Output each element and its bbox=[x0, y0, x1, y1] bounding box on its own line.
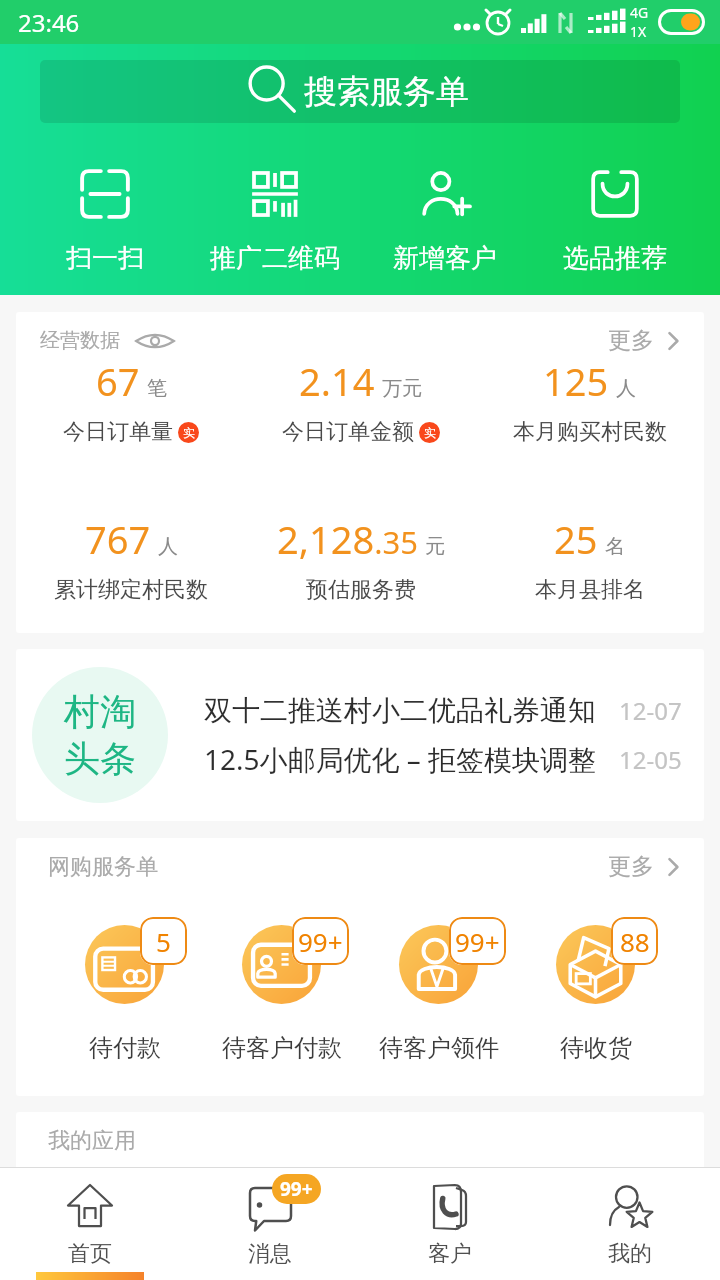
staticText: 12-05 bbox=[619, 743, 682, 776]
staticText: 人 bbox=[158, 534, 178, 559]
staticText: 5 bbox=[156, 924, 171, 959]
staticText: 元 bbox=[425, 534, 445, 559]
staticText: 村淘 bbox=[64, 689, 136, 734]
staticText: 67 bbox=[96, 355, 140, 407]
staticText: 本月购买村民数 bbox=[513, 418, 667, 446]
staticText: 笔 bbox=[147, 376, 167, 401]
staticText: 新增客户 bbox=[393, 242, 497, 275]
staticText: 我的应用 bbox=[48, 1127, 136, 1155]
button[interactable]: 村淘 bbox=[16, 649, 704, 821]
staticText: 实 bbox=[424, 425, 436, 440]
staticText: 名 bbox=[605, 534, 625, 559]
staticText: 99+ bbox=[455, 924, 500, 959]
staticText: 本月县排名 bbox=[535, 576, 645, 604]
button[interactable]: 2,128.35 bbox=[246, 513, 475, 604]
staticText: 我的 bbox=[608, 1240, 652, 1268]
staticText: 搜索服务单 bbox=[304, 71, 469, 113]
staticText: 88 bbox=[620, 924, 650, 959]
button[interactable]: 99+ bbox=[203, 917, 360, 1063]
button[interactable]: 125 bbox=[475, 355, 704, 446]
staticText: 头条 bbox=[64, 736, 136, 781]
staticText: 12-07 bbox=[619, 694, 682, 727]
staticText: 待收货 bbox=[560, 1033, 632, 1063]
staticText: 首页 bbox=[68, 1240, 112, 1268]
staticText: 扫一扫 bbox=[66, 242, 144, 275]
button[interactable]: 更多 bbox=[608, 326, 684, 355]
button[interactable]: 更多 bbox=[608, 852, 684, 881]
staticText: 125 bbox=[543, 355, 609, 407]
button[interactable]: 67 bbox=[16, 355, 246, 446]
button[interactable]: 2.14 bbox=[246, 355, 475, 446]
button[interactable]: 我的 bbox=[540, 1167, 720, 1280]
staticText: 待客户付款 bbox=[222, 1033, 342, 1063]
staticText: 双十二推送村小二优品礼券通知 bbox=[204, 693, 601, 728]
staticText: 今日订单金额 bbox=[282, 418, 414, 446]
staticText: 25 bbox=[554, 513, 598, 565]
button[interactable]: 767 bbox=[16, 513, 246, 604]
staticText: 推广二维码 bbox=[210, 242, 340, 275]
staticText: 累计绑定村民数 bbox=[54, 576, 208, 604]
staticText: 更多 bbox=[608, 326, 654, 355]
button[interactable]: 5 bbox=[46, 917, 203, 1063]
staticText: 网购服务单 bbox=[48, 853, 158, 881]
button[interactable]: 88 bbox=[517, 917, 674, 1063]
staticText: 选品推荐 bbox=[563, 242, 667, 275]
staticText: 2,128.35 bbox=[277, 513, 418, 565]
button[interactable]: 搜索服务单 bbox=[40, 60, 680, 123]
staticText: 人 bbox=[616, 376, 636, 401]
staticText: 12.5小邮局优化 – 拒签模块调整 bbox=[204, 740, 601, 778]
staticText: 99+ bbox=[280, 1176, 313, 1202]
staticText: 23:46 bbox=[18, 6, 80, 39]
staticText: 767 bbox=[85, 513, 151, 565]
staticText: 消息 bbox=[248, 1240, 292, 1268]
staticText: 99+ bbox=[298, 924, 343, 959]
button[interactable]: 选品推荐 bbox=[530, 168, 700, 275]
button[interactable]: 25 bbox=[475, 513, 704, 604]
button[interactable]: 客户 bbox=[360, 1167, 540, 1280]
staticText: 4G bbox=[630, 3, 649, 22]
staticText: 待付款 bbox=[89, 1033, 161, 1063]
staticText: 更多 bbox=[608, 852, 654, 881]
button[interactable]: 99+ bbox=[180, 1167, 360, 1280]
button[interactable]: 首页 bbox=[0, 1167, 180, 1280]
button[interactable]: 推广二维码 bbox=[190, 168, 360, 275]
staticText: 经营数据 bbox=[40, 328, 120, 353]
staticText: 预估服务费 bbox=[306, 576, 416, 604]
button[interactable]: Toggle visibility bbox=[134, 328, 176, 354]
button[interactable]: 99+ bbox=[360, 917, 517, 1063]
staticText: 待客户领件 bbox=[379, 1033, 499, 1063]
staticText: 客户 bbox=[428, 1240, 472, 1268]
staticText: 1X bbox=[630, 22, 647, 41]
staticText: 万元 bbox=[382, 376, 422, 401]
button[interactable]: 新增客户 bbox=[360, 168, 530, 275]
staticText: 今日订单量 bbox=[63, 418, 173, 446]
button[interactable]: 扫一扫 bbox=[20, 168, 190, 275]
staticText: 2.14 bbox=[299, 355, 375, 407]
staticText: 实 bbox=[183, 425, 195, 440]
